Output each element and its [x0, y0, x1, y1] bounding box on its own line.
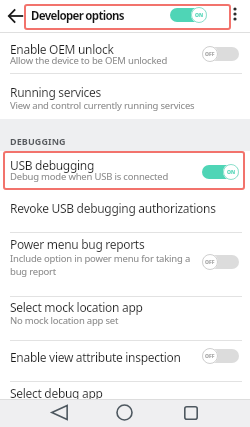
button[interactable]: Enable view attribute inspection [0, 341, 250, 381]
staticText: Allow the device to be OEM unlocked [10, 54, 168, 67]
staticText: DEBUGGING [10, 135, 66, 147]
staticText: Developer options [31, 8, 124, 24]
staticText: Select mock location app [10, 299, 143, 315]
button[interactable] [8, 8, 24, 24]
staticText: OFF [205, 259, 215, 266]
staticText: Revoke USB debugging authorizations [10, 200, 216, 216]
staticText: OFF [205, 51, 215, 58]
staticText: Debug mode when USB is connected [10, 170, 169, 183]
button[interactable]: Revoke USB debugging authorizations [0, 191, 250, 232]
button[interactable] [116, 404, 133, 421]
button[interactable]: Running services [0, 74, 250, 119]
staticText: Select debug app [10, 385, 103, 401]
staticText: ON [227, 169, 236, 176]
staticText: ON [195, 12, 204, 19]
staticText: No mock location app set [10, 314, 119, 327]
button[interactable]: ON [170, 7, 207, 23]
button[interactable] [231, 4, 239, 24]
button[interactable]: Select mock location app [0, 297, 250, 340]
staticText: Enable OEM unlock [10, 41, 114, 57]
staticText: Power menu bug reports [10, 236, 145, 252]
staticText: USB debugging [10, 157, 94, 173]
button[interactable] [184, 406, 198, 420]
staticText: Running services [10, 84, 101, 100]
staticText: View and control currently running servi… [10, 99, 195, 112]
staticText: Include option in power menu for taking … [10, 252, 191, 278]
button[interactable]: Power menu bug reports [0, 233, 250, 296]
button[interactable]: Enable OEM unlock [0, 33, 250, 73]
button[interactable]: USB debugging [0, 151, 250, 191]
staticText: OFF [205, 353, 215, 360]
staticText: Enable view attribute inspection [10, 349, 181, 365]
button[interactable] [51, 405, 68, 420]
